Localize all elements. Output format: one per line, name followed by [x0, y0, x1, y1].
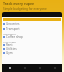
button[interactable]: Coffee shop	[3, 35, 61, 39]
button[interactable]: Tab 1	[2, 64, 17, 72]
button[interactable]: Rent	[3, 43, 61, 47]
button[interactable]: Tab 4	[47, 64, 62, 72]
button[interactable]: Gym	[3, 51, 61, 55]
staticText: Coffee shop	[6, 35, 23, 39]
staticText: LAST WEEK	[3, 40, 16, 43]
button[interactable]: Tab 3	[32, 64, 47, 72]
staticText: Rent	[6, 43, 13, 47]
staticText: Utilities	[6, 47, 17, 51]
button[interactable]: Utilities	[3, 47, 61, 51]
staticText: Gym	[6, 51, 13, 55]
staticText: Track every rupee	[3, 1, 35, 6]
button[interactable]: Transport	[3, 27, 61, 31]
staticText: Transport	[6, 27, 20, 31]
button[interactable]: Groceries	[3, 22, 61, 26]
staticText: YESTERDAY	[3, 32, 17, 35]
staticText: Groceries	[6, 22, 20, 26]
button[interactable]: Tab 2	[17, 64, 32, 72]
staticText: Simple budgeting for everyone	[3, 7, 47, 11]
